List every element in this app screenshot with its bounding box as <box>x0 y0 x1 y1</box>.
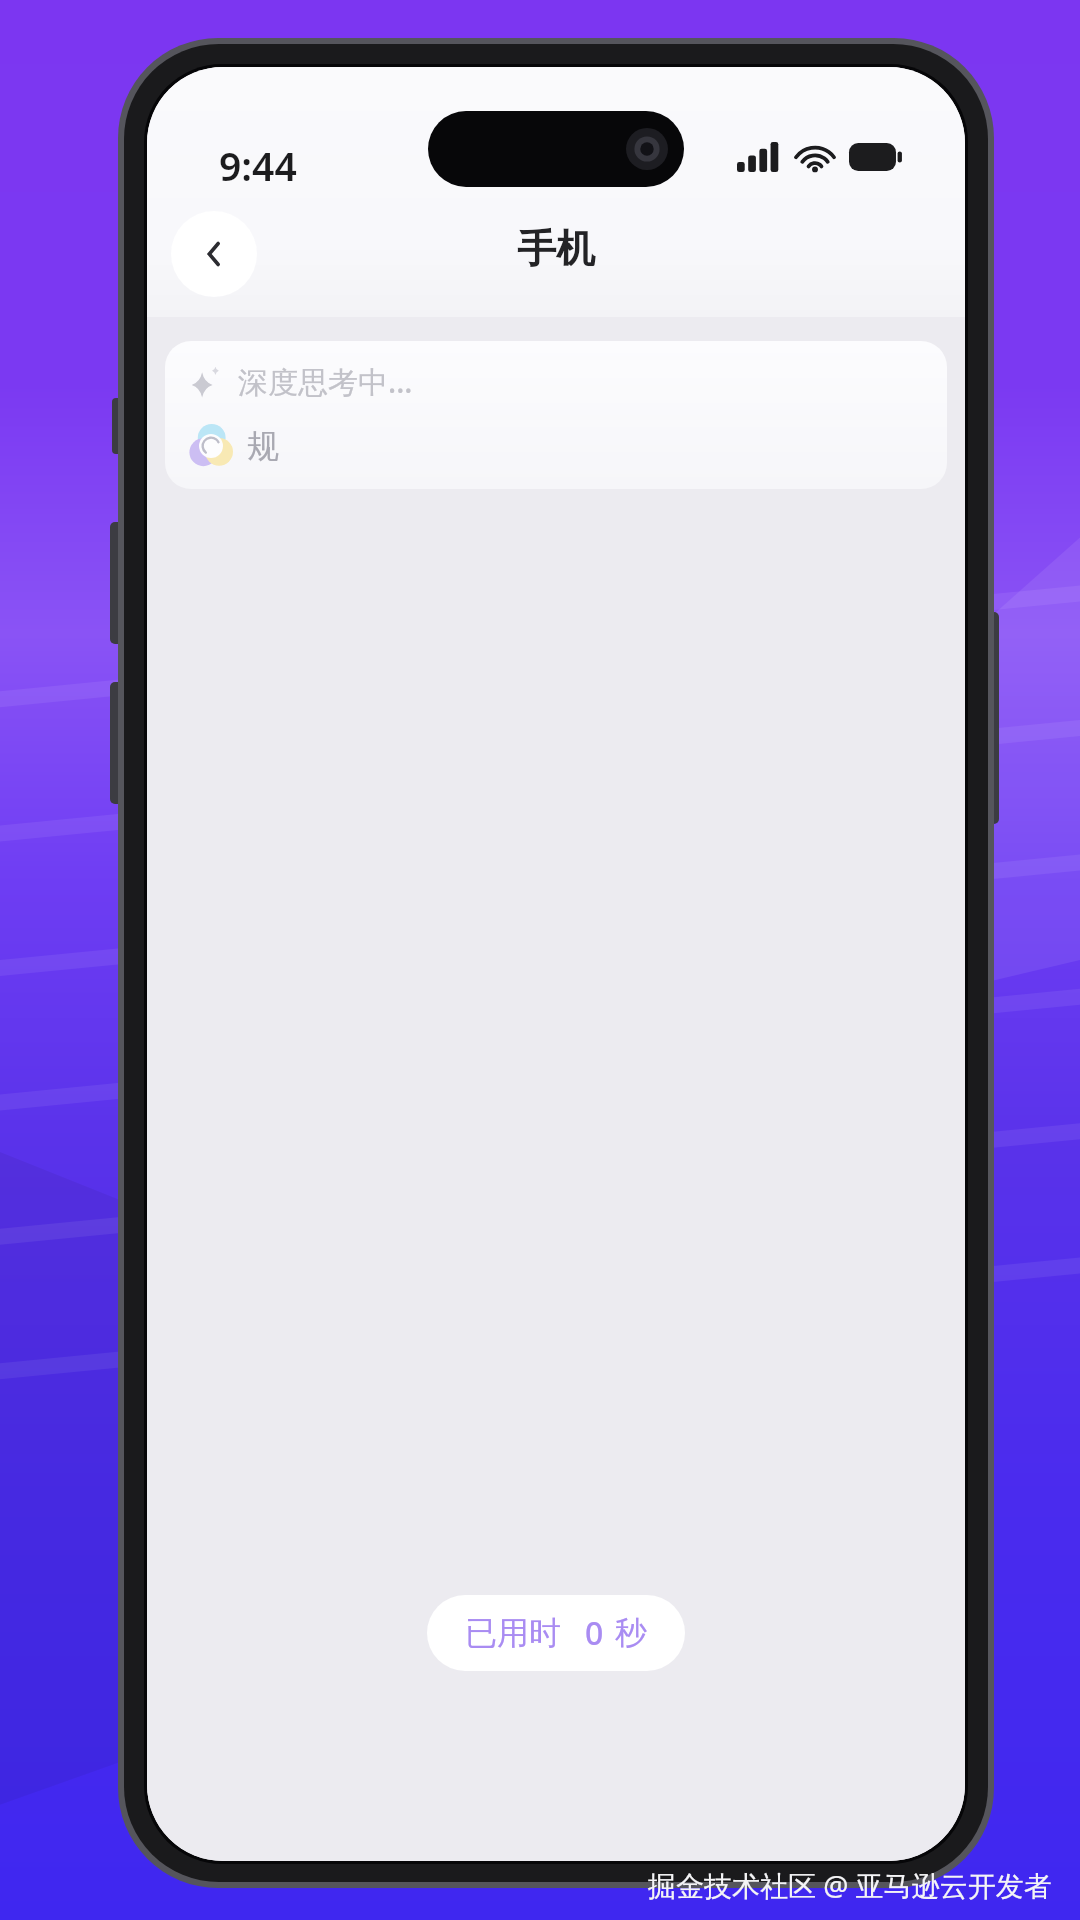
staticText: 手机 <box>517 224 595 273</box>
staticText: 秒 <box>615 1613 647 1653</box>
staticText: 0 <box>585 1611 604 1655</box>
button[interactable]: Back <box>171 211 257 297</box>
button[interactable]: 深度思考中... <box>165 341 947 489</box>
staticText: 规 <box>247 426 279 466</box>
button[interactable]: 已用时 <box>427 1595 685 1671</box>
staticText: 深度思考中... <box>238 361 413 402</box>
staticText: 已用时 <box>465 1613 561 1653</box>
staticText: 9:44 <box>219 139 297 192</box>
staticText: 掘金技术社区 @ 亚马逊云开发者 <box>648 1866 1052 1904</box>
